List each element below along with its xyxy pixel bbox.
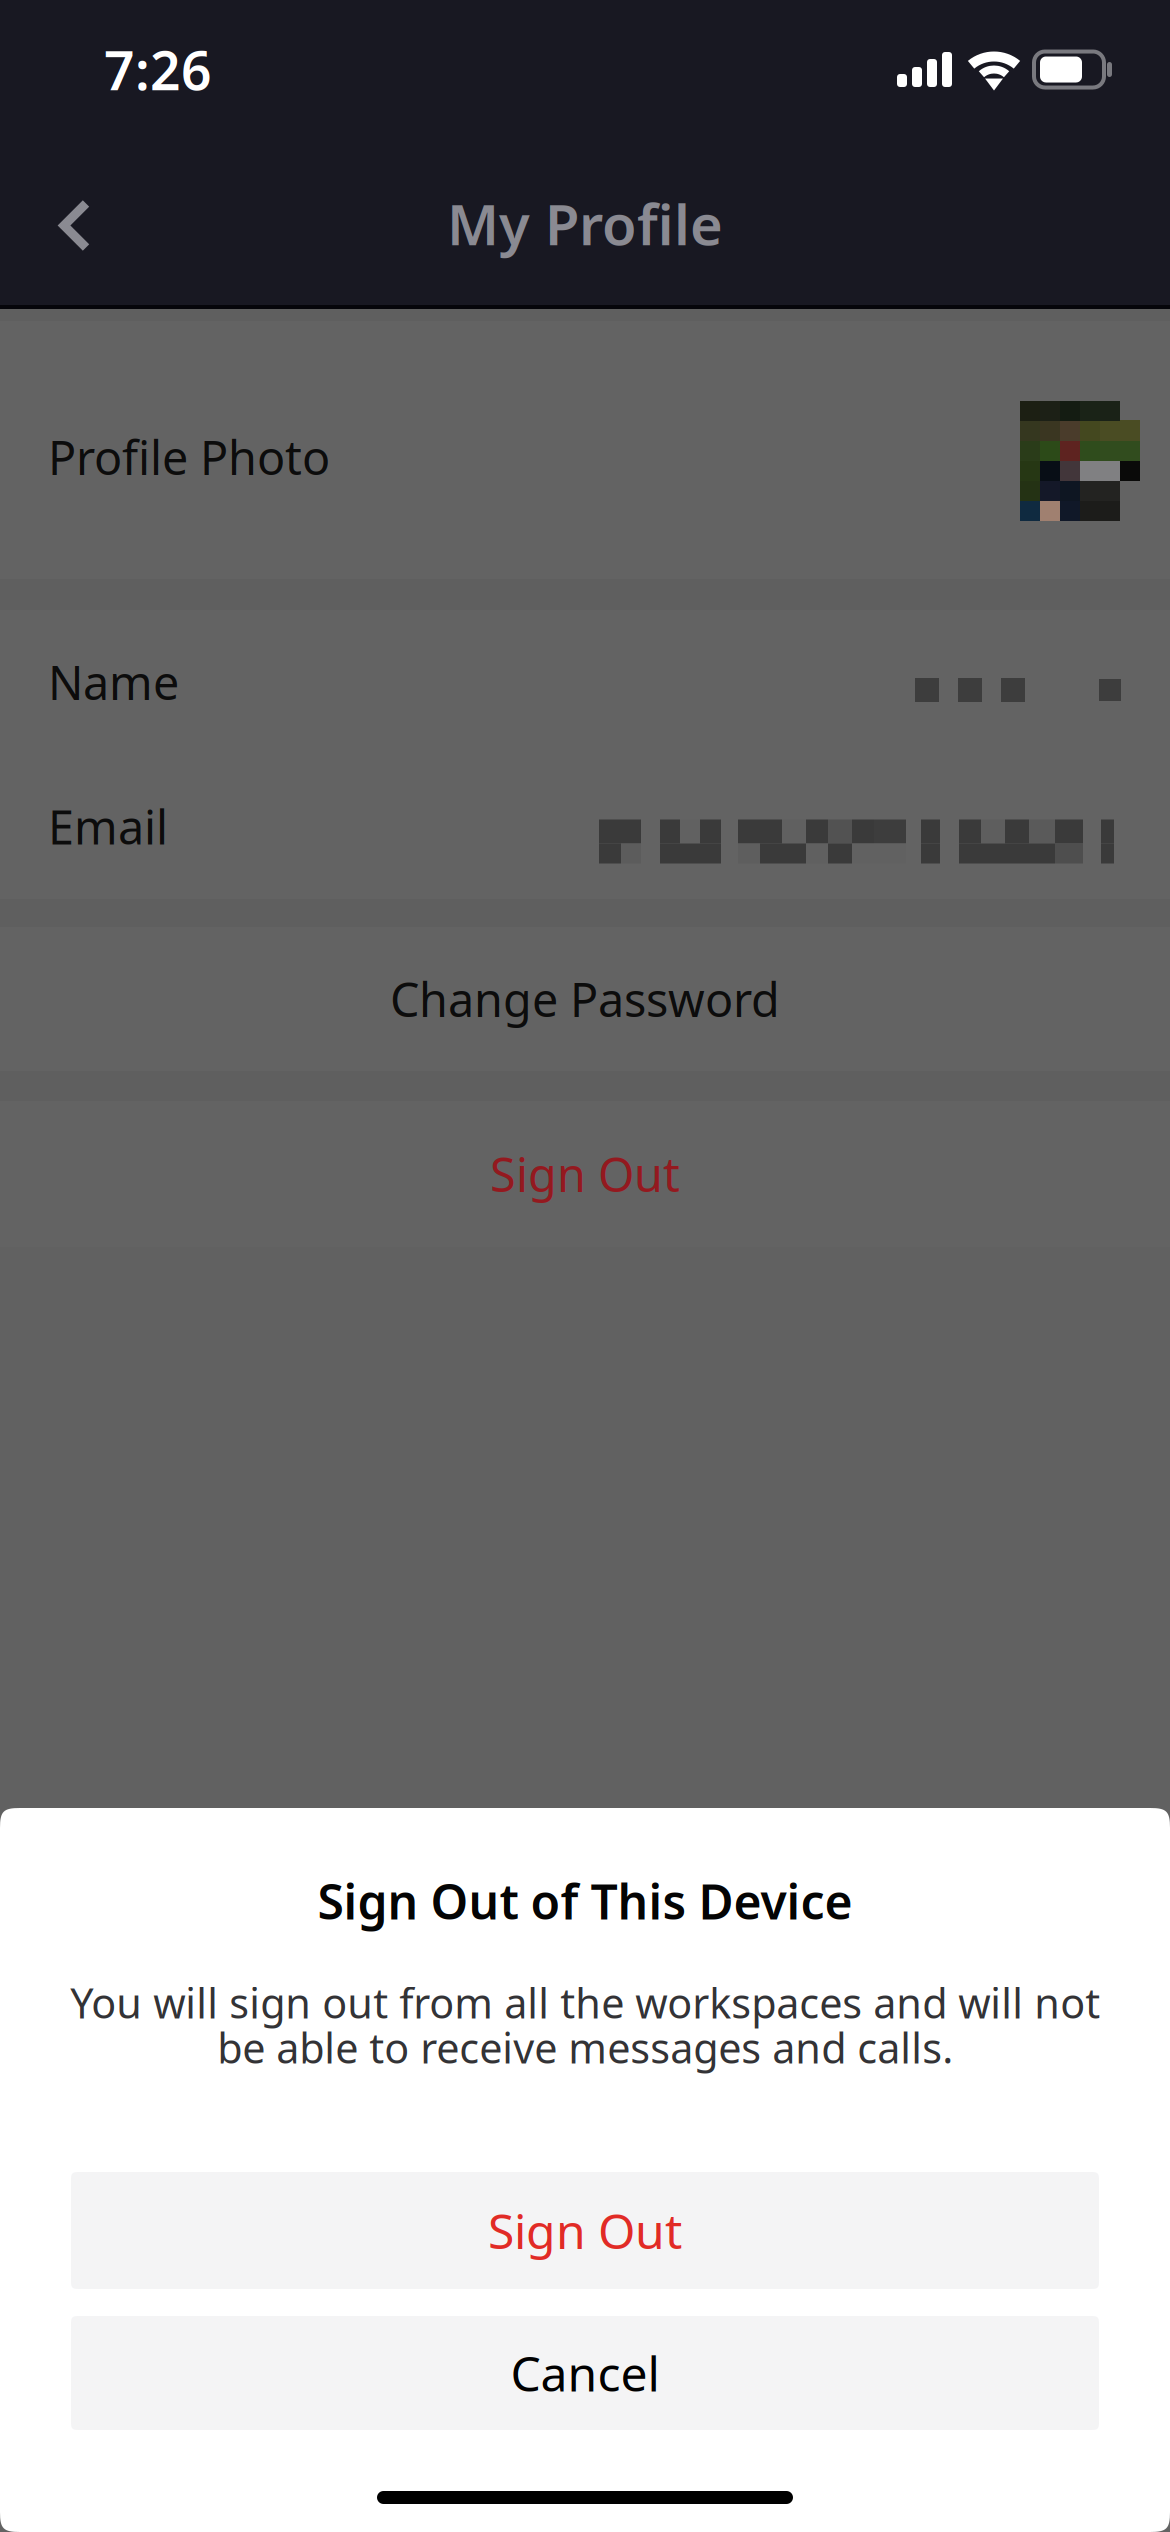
staticText: Sign Out of This Device — [317, 1869, 852, 1933]
staticText: My Profile — [447, 186, 723, 261]
button[interactable]: Profile Photo — [0, 321, 1170, 579]
button[interactable]: Name — [0, 610, 1170, 754]
staticText: Change Password — [390, 968, 780, 1030]
staticText: Email — [48, 795, 168, 857]
staticText: 7:26 — [104, 34, 212, 105]
button[interactable]: Dismiss — [0, 309, 1170, 1808]
button[interactable]: Change Password — [0, 927, 1170, 1071]
button[interactable]: Sign Out — [0, 1101, 1170, 1247]
button[interactable]: Email — [0, 754, 1170, 899]
staticText: Sign Out — [490, 1143, 680, 1205]
button[interactable]: Cancel — [71, 2316, 1099, 2430]
staticText: Cancel — [510, 2341, 659, 2405]
staticText: You will sign out from all the workspace… — [70, 1975, 1100, 2075]
button[interactable]: Back — [20, 163, 130, 283]
staticText: Profile Photo — [48, 426, 330, 488]
button[interactable]: Sign Out — [71, 2172, 1099, 2289]
staticText: Sign Out — [488, 2199, 682, 2262]
staticText: Name — [48, 651, 179, 713]
